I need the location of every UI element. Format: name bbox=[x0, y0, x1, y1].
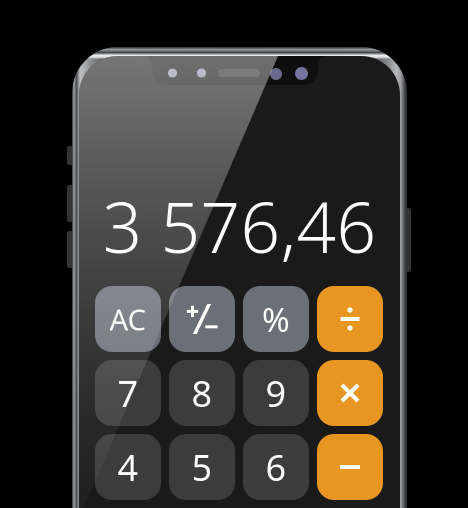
button[interactable]: 9 bbox=[243, 360, 309, 426]
staticText: 9 bbox=[265, 369, 286, 417]
button[interactable]: divide bbox=[317, 286, 383, 352]
button[interactable]: AC bbox=[95, 286, 161, 352]
staticText: 6 bbox=[265, 443, 286, 491]
button[interactable]: multiply bbox=[317, 360, 383, 426]
button[interactable]: 5 bbox=[169, 434, 235, 500]
button[interactable]: % bbox=[243, 286, 309, 352]
button[interactable]: 7 bbox=[95, 360, 161, 426]
button[interactable]: minus bbox=[317, 434, 383, 500]
staticText: % bbox=[262, 297, 290, 341]
staticText: 3 576,46 bbox=[102, 180, 376, 272]
staticText: 5 bbox=[191, 443, 212, 491]
staticText: 8 bbox=[191, 369, 212, 417]
button[interactable]: 4 bbox=[95, 434, 161, 500]
button[interactable]: 8 bbox=[169, 360, 235, 426]
staticText: 4 bbox=[117, 443, 138, 491]
staticText: 7 bbox=[117, 369, 138, 417]
staticText: AC bbox=[109, 299, 146, 338]
button[interactable]: 6 bbox=[243, 434, 309, 500]
button[interactable]: plus or minus bbox=[169, 286, 235, 352]
